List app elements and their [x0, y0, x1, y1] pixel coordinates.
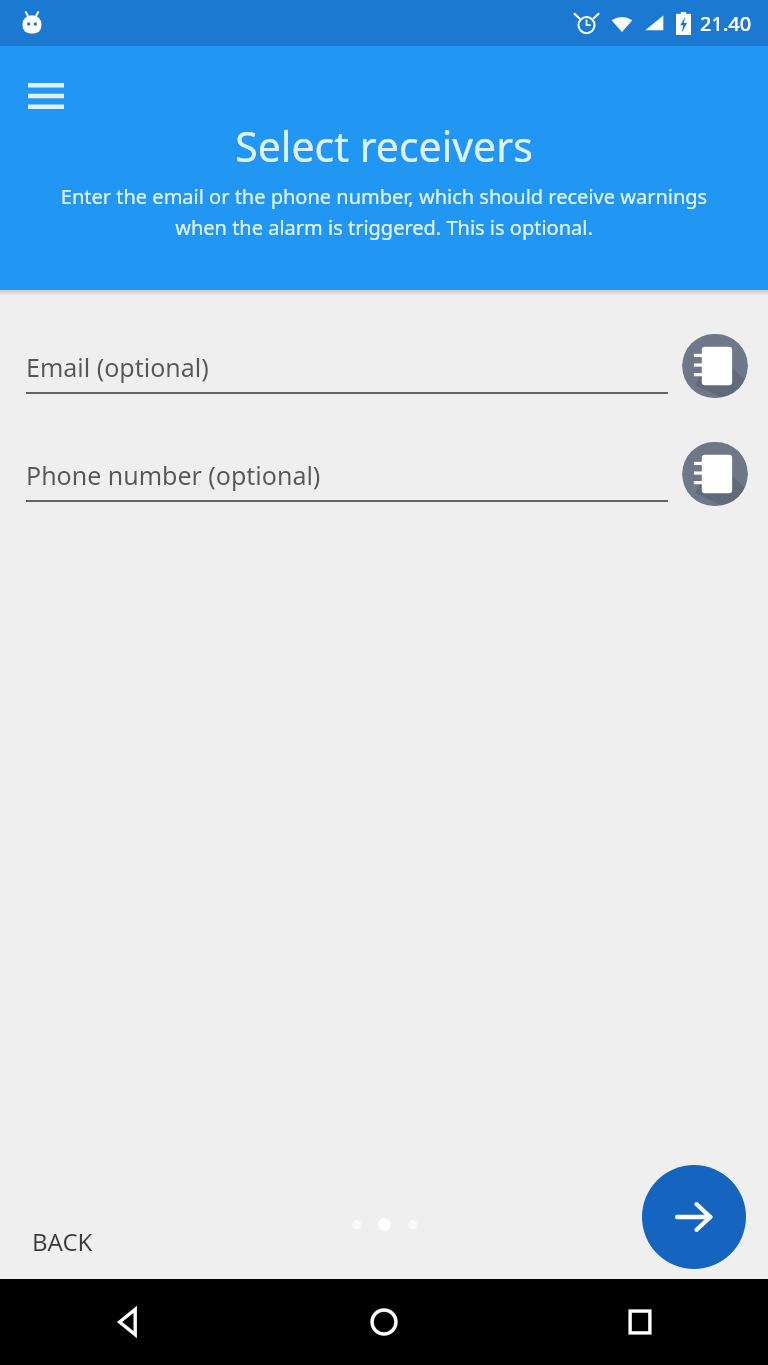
button[interactable]: Pick phone contact	[682, 442, 748, 506]
staticText: Phone number (optional)	[26, 458, 321, 492]
button[interactable]: Recent apps	[602, 1284, 678, 1360]
button[interactable]: Phone number (optional)	[26, 458, 668, 502]
staticText: BACK	[32, 1225, 93, 1258]
staticText: 21.40	[700, 10, 752, 37]
button[interactable]: BACK	[32, 1225, 93, 1258]
button[interactable]: Pick email contact	[682, 334, 748, 398]
button[interactable]: Email (optional)	[26, 350, 668, 394]
staticText: Select receivers	[235, 118, 533, 174]
button[interactable]: Next	[642, 1165, 746, 1269]
staticText: Email (optional)	[26, 350, 209, 384]
button[interactable]: Back	[90, 1284, 166, 1360]
staticText: Enter the email or the phone number, whi…	[42, 183, 726, 240]
button[interactable]: Home	[346, 1284, 422, 1360]
button[interactable]: Open navigation menu	[22, 72, 70, 120]
